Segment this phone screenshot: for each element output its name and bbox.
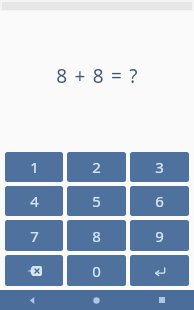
button[interactable]: Enter	[130, 255, 189, 286]
button[interactable]: Back	[0, 290, 64, 310]
button[interactable]: 0	[67, 255, 126, 286]
staticText: 1	[30, 157, 39, 177]
button[interactable]: 4	[5, 186, 63, 216]
staticText: 8 + 8 = ?	[56, 63, 139, 89]
staticText: 8	[92, 226, 101, 246]
button[interactable]: 1	[5, 152, 63, 182]
staticText: 2	[92, 157, 101, 177]
button[interactable]: Home	[64, 290, 129, 310]
button[interactable]: 9	[130, 220, 189, 251]
button[interactable]: 6	[130, 186, 189, 216]
staticText: 7	[30, 226, 39, 246]
staticText: 3	[155, 157, 164, 177]
button[interactable]: 7	[5, 220, 63, 251]
staticText: 5	[92, 191, 101, 211]
button[interactable]: 2	[67, 152, 126, 182]
staticText: 6	[155, 191, 164, 211]
button[interactable]: 3	[130, 152, 189, 182]
staticText: 0	[92, 261, 101, 281]
button[interactable]: 5	[67, 186, 126, 216]
button[interactable]: Backspace	[5, 255, 63, 286]
button[interactable]: Recent apps	[129, 290, 194, 310]
staticText: 9	[155, 226, 164, 246]
staticText: 4	[30, 191, 39, 211]
button[interactable]: 8	[67, 220, 126, 251]
